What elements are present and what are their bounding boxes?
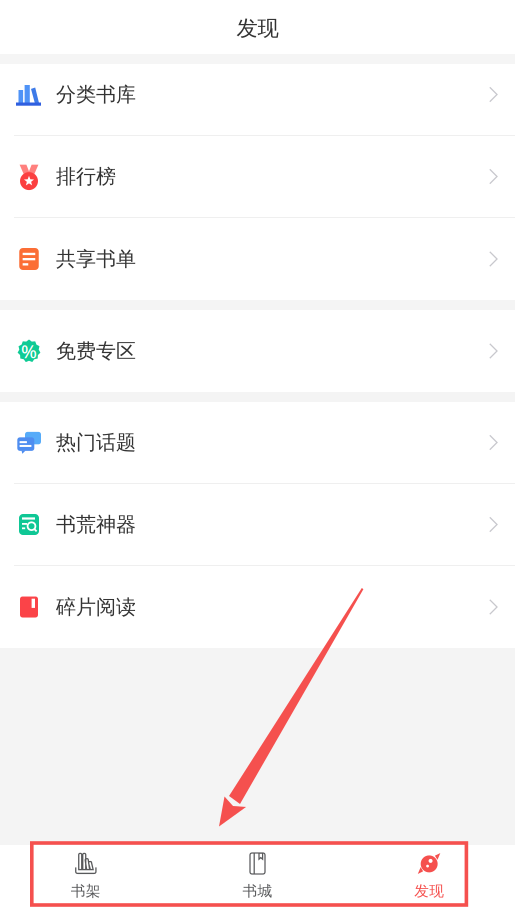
button[interactable]: 书架 xyxy=(0,845,172,908)
button[interactable]: 共享书单 xyxy=(0,218,515,300)
staticText: 发现 xyxy=(414,882,444,900)
staticText: 书荒神器 xyxy=(56,512,136,537)
staticText: 免费专区 xyxy=(56,339,136,363)
button[interactable]: % xyxy=(0,310,515,392)
staticText: 共享书单 xyxy=(56,247,136,271)
button[interactable]: 书荒神器 xyxy=(0,484,515,566)
staticText: % xyxy=(21,339,37,363)
button[interactable]: 分类书库 xyxy=(0,54,515,136)
staticText: 热门话题 xyxy=(56,430,136,455)
staticText: 书城 xyxy=(242,882,272,900)
button[interactable]: 热门话题 xyxy=(0,402,515,484)
button[interactable]: 排行榜 xyxy=(0,136,515,218)
staticText: 分类书库 xyxy=(56,82,136,107)
button[interactable]: 发现 xyxy=(343,845,515,908)
staticText: 发现 xyxy=(236,15,278,42)
staticText: 排行榜 xyxy=(56,164,116,189)
staticText: 书架 xyxy=(71,882,101,900)
staticText: 碎片阅读 xyxy=(56,595,136,619)
button[interactable]: 书城 xyxy=(172,845,343,908)
button[interactable]: 碎片阅读 xyxy=(0,566,515,648)
